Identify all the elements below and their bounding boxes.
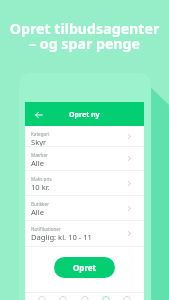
staticText: Kategori <box>31 131 50 137</box>
staticText: Maks pris <box>31 176 52 182</box>
button[interactable]: Butikker <box>25 196 144 221</box>
staticText: Opret ny <box>69 110 100 120</box>
button[interactable]: Tab 1 <box>38 296 46 300</box>
button[interactable]: Maks pris <box>25 171 144 196</box>
staticText: Alle <box>31 207 45 217</box>
button[interactable]: Tab 2 <box>59 296 67 300</box>
button[interactable]: Notifikationer <box>25 221 144 247</box>
button[interactable]: Back <box>33 109 45 121</box>
button[interactable]: Tab 5 <box>123 296 131 300</box>
staticText: Daglig: kl. 10 - 11 <box>31 232 92 242</box>
staticText: Butikker <box>31 201 50 207</box>
staticText: Opret tilbudsagenter – og spar penge <box>0 19 169 53</box>
staticText: Notifikationer <box>31 226 61 232</box>
staticText: 10 kr. <box>31 182 50 192</box>
staticText: Mærker <box>31 152 48 158</box>
button[interactable]: Tab 3 <box>81 296 89 300</box>
button[interactable]: Tab 4 <box>102 296 110 300</box>
staticText: Opret <box>73 262 97 273</box>
button[interactable]: Kategori <box>25 126 144 147</box>
staticText: Skyr <box>31 137 47 146</box>
button[interactable]: Opret <box>54 257 115 278</box>
staticText: Alle <box>31 158 45 168</box>
button[interactable]: Mærker <box>25 147 144 171</box>
